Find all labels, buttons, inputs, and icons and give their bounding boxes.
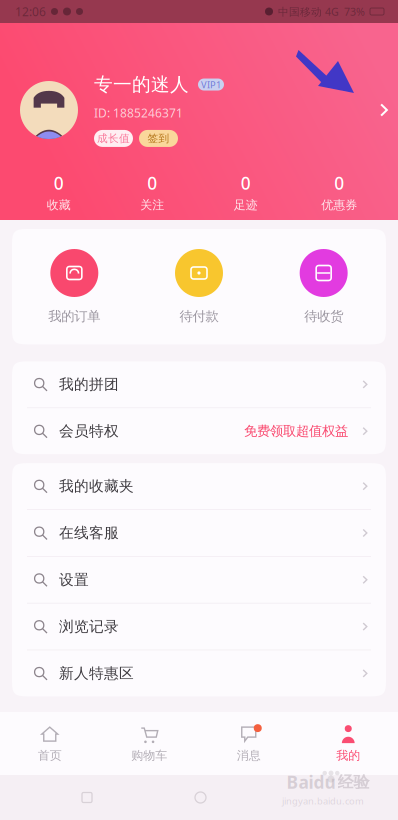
button[interactable]: 浏览记录	[12, 604, 386, 650]
staticText: 新人特惠区	[59, 664, 134, 682]
button[interactable]: 我的收藏夹	[12, 463, 386, 509]
staticText: 中国移动 4G	[278, 4, 339, 19]
staticText: 我的	[336, 748, 360, 763]
staticText: 我的订单	[48, 308, 100, 324]
button[interactable]: 消息	[199, 724, 298, 763]
button[interactable]: 我的	[298, 724, 398, 763]
button[interactable]: 会员特权	[12, 408, 386, 454]
staticText: 消息	[237, 748, 261, 763]
staticText: VIP1	[201, 78, 221, 91]
staticText: 成长值	[97, 132, 130, 145]
staticText: 12:06	[15, 3, 46, 19]
staticText: 0	[241, 172, 251, 195]
staticText: 免费领取超值权益	[244, 423, 348, 439]
staticText: 优惠券	[321, 198, 357, 212]
staticText: 我的拼团	[59, 375, 119, 393]
button[interactable]: 我的拼团	[12, 361, 386, 407]
staticText: 签到	[147, 132, 169, 145]
staticText: 关注	[140, 198, 164, 212]
button[interactable]: 购物车	[99, 724, 199, 763]
button[interactable]: 0	[12, 172, 105, 212]
staticText: 我的收藏夹	[59, 477, 134, 495]
staticText: 浏览记录	[59, 618, 119, 636]
button[interactable]: 新人特惠区	[12, 650, 386, 696]
staticText: 0	[334, 172, 344, 195]
staticText: Baidu	[286, 771, 335, 794]
staticText: 购物车	[131, 748, 167, 763]
button[interactable]: 0	[292, 172, 386, 212]
button[interactable]: 成长值	[94, 130, 133, 147]
staticText: jingyan.baidu.com	[282, 795, 364, 807]
button[interactable]: 待收货	[261, 249, 386, 324]
staticText: 收藏	[47, 198, 71, 212]
button[interactable]: 查看个人资料	[368, 88, 398, 132]
staticText: 73%	[344, 4, 365, 19]
staticText: 经验	[337, 772, 369, 792]
button[interactable]: 首页	[0, 724, 99, 763]
staticText: 在线客服	[59, 524, 119, 542]
staticText: 0	[54, 172, 64, 195]
staticText: 设置	[59, 571, 89, 589]
staticText: 会员特权	[59, 422, 119, 440]
button[interactable]: 签到	[139, 130, 178, 147]
staticText: 待收货	[304, 308, 343, 324]
button[interactable]: 0	[199, 172, 292, 212]
staticText: 首页	[38, 748, 62, 763]
button[interactable]: 待付款	[137, 249, 261, 324]
staticText: 待付款	[179, 308, 218, 324]
staticText: 0	[147, 172, 157, 195]
button[interactable]: 0	[105, 172, 199, 212]
staticText: 专一的迷人	[94, 73, 189, 96]
button[interactable]: 在线客服	[12, 510, 386, 556]
button[interactable]: 我的订单	[12, 249, 137, 324]
staticText: ID: 1885246371	[94, 105, 183, 121]
button[interactable]: 设置	[12, 557, 386, 603]
staticText: 足迹	[234, 198, 258, 212]
